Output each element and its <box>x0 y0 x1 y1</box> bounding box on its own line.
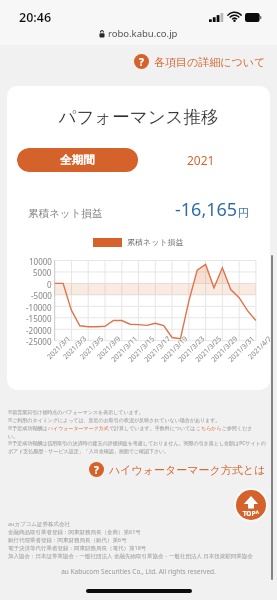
staticText: 2021/3/9 <box>95 334 123 362</box>
button[interactable]: 全期間 <box>17 148 138 172</box>
staticText: 加入協会：日本証券業協会・一般社団法人 金融先物取引業協会・一般社団法人 日本投… <box>8 552 253 560</box>
button[interactable]: ? <box>89 462 266 477</box>
staticText: 各項目の詳細について <box>154 55 266 69</box>
staticText: 2021/3/11 <box>109 334 140 365</box>
staticText: -16,165 <box>175 197 238 222</box>
staticText: au Kabucom Securities Co., Ltd. All righ… <box>0 567 277 576</box>
staticText: ※前営業日引け後時点のパフォーマンスを表示しています。 <box>8 409 144 416</box>
staticText: い。 <box>8 433 19 439</box>
staticText: 20:46 <box>19 9 52 26</box>
staticText: 2021/3/29 <box>209 334 240 365</box>
staticText: 2021/3/23 <box>176 334 207 365</box>
staticText: ※予定成功報酬は信用取引の決済時の建玉の評価損益を考慮しておりません。実際の引き… <box>8 440 273 447</box>
staticText: -25000 <box>26 336 52 347</box>
staticText: -5000 <box>31 290 52 301</box>
staticText: 電子決済等代行業者登録：関東財務局長（電代）第18号 <box>8 544 147 552</box>
staticText: 5000 <box>33 267 52 278</box>
staticText: -10000 <box>26 302 52 313</box>
staticText: 円 <box>238 206 249 220</box>
staticText: ※予定成功報酬は <box>8 425 48 432</box>
staticText: ハイウォーターマーク方式とは <box>109 463 266 477</box>
staticText: robo.kabu.co.jp <box>108 27 178 40</box>
staticText: TOP^ <box>236 509 266 518</box>
staticText: 2021/3/19 <box>159 334 190 365</box>
staticText: auカブコム証券株式会社 <box>8 520 71 528</box>
staticText: ご参照くださ <box>222 425 253 431</box>
staticText: 累積ネット損益 <box>28 207 103 220</box>
staticText: 2021/3/3 <box>61 334 89 362</box>
staticText: ボアド支払履歴・サービス設定」「入出金確認」画面でご確認下さい。 <box>8 448 170 454</box>
staticText: 金融商品取引業者登録：関東財務局長（金商）第61号 <box>8 528 141 536</box>
staticText: 0 <box>47 279 52 290</box>
staticText: 2021/3/5 <box>78 334 106 362</box>
staticText: 2021/3/1 <box>45 334 73 362</box>
button[interactable]: Scroll to top <box>236 490 266 520</box>
staticText: こちらから <box>196 425 222 431</box>
staticText: ※ご利用のタイミングによっては、直近のお取引の状況が反映されていない場合がありま… <box>8 417 221 424</box>
staticText: ? <box>139 55 144 69</box>
staticText: 銀行代理業者登録：関東財務局長（銀代）第6号 <box>8 536 127 544</box>
staticText: 累積ネット損益 <box>127 237 184 247</box>
staticText: 2021 <box>187 152 215 168</box>
staticText: 2021/3/31 <box>226 334 257 365</box>
staticText: -20000 <box>26 325 52 336</box>
button[interactable]: ? <box>134 54 266 69</box>
staticText: -15000 <box>26 313 52 324</box>
staticText: パフォーマンス推移 <box>7 106 270 128</box>
staticText: 10000 <box>29 256 52 267</box>
staticText: ハイウォーターマーク方式 <box>48 425 109 431</box>
staticText: 2021/3/25 <box>193 334 224 365</box>
staticText: で計算しています。手数料については <box>109 425 196 431</box>
staticText: 2021/4/2 <box>246 334 270 362</box>
staticText: ? <box>94 463 99 477</box>
staticText: 2021/3/17 <box>142 334 173 365</box>
staticText: 全期間 <box>60 153 95 167</box>
staticText: 2021/3/15 <box>126 334 157 365</box>
button[interactable]: 2021 <box>138 148 263 172</box>
